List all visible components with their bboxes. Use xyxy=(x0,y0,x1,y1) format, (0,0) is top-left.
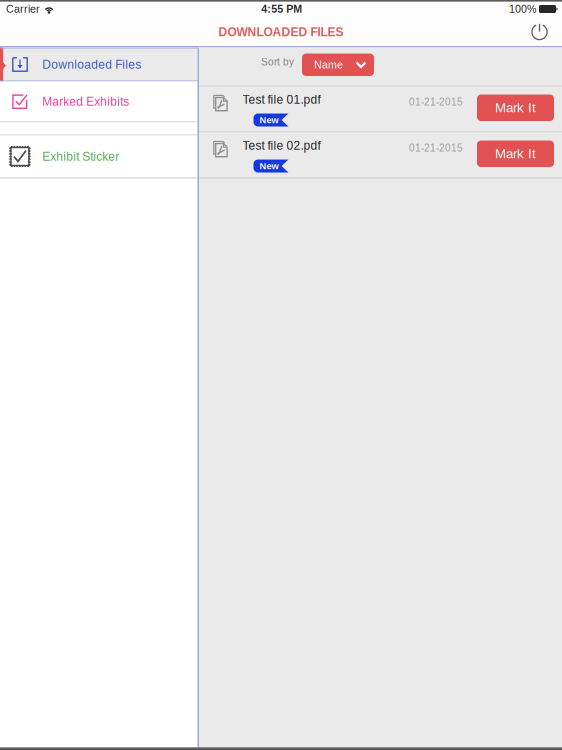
staticText: 100% xyxy=(509,3,536,15)
staticText: Test file 01.pdf xyxy=(242,93,320,106)
button[interactable]: Downloaded Files xyxy=(0,47,197,81)
button[interactable]: Power xyxy=(517,19,562,45)
button[interactable]: Test file 01.pdf xyxy=(199,86,562,131)
button[interactable]: Exhibit Sticker xyxy=(0,135,197,177)
button[interactable]: Mark It xyxy=(477,94,554,121)
staticText: Test file 02.pdf xyxy=(242,139,320,152)
staticText: DOWNLOADED FILES xyxy=(218,25,343,39)
staticText: New xyxy=(259,115,278,125)
button[interactable]: Test file 02.pdf xyxy=(199,132,562,177)
staticText: Mark It xyxy=(495,100,536,115)
staticText: Carrier xyxy=(6,3,40,15)
button[interactable]: Marked Exhibits xyxy=(0,81,197,121)
staticText: Marked Exhibits xyxy=(42,95,129,108)
staticText: Downloaded Files xyxy=(42,58,141,71)
staticText: 01-21-2015 xyxy=(409,96,463,108)
staticText: Sort by xyxy=(261,56,294,68)
staticText: 01-21-2015 xyxy=(409,142,463,154)
staticText: Exhibit Sticker xyxy=(42,150,119,163)
staticText: New xyxy=(259,161,278,171)
button[interactable]: Mark It xyxy=(477,140,554,167)
button[interactable]: Name xyxy=(302,53,374,76)
staticText: Mark It xyxy=(495,146,536,161)
staticText: Name xyxy=(314,59,343,71)
staticText: 4:55 PM xyxy=(261,3,302,15)
